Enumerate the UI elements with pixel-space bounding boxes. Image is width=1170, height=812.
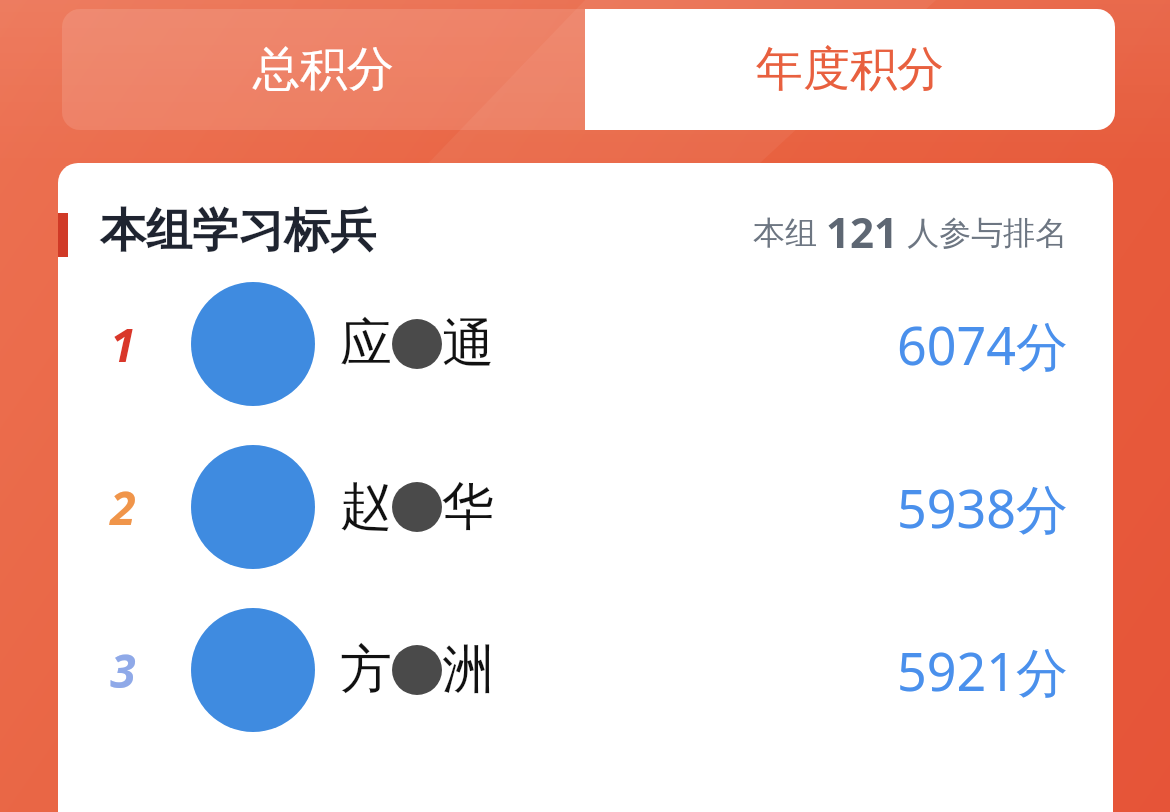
- staticText: 3: [110, 639, 136, 702]
- staticText: 1: [110, 313, 136, 376]
- button[interactable]: 总积分: [62, 9, 585, 130]
- staticText: 人参与排名: [899, 210, 1068, 254]
- staticText: 洲: [442, 637, 494, 703]
- staticText: 应: [340, 311, 392, 377]
- staticText: 5938分: [897, 472, 1068, 543]
- button[interactable]: 2: [58, 445, 1113, 569]
- button[interactable]: 3: [58, 608, 1113, 732]
- staticText: 赵: [340, 474, 392, 540]
- staticText: 5921分: [897, 635, 1068, 706]
- button[interactable]: 1: [58, 282, 1113, 406]
- staticText: 方: [340, 637, 392, 703]
- staticText: 本组: [753, 210, 826, 254]
- staticText: 2: [110, 476, 136, 539]
- staticText: 年度积分: [756, 40, 944, 99]
- staticText: 121: [826, 203, 899, 260]
- staticText: 华: [442, 474, 494, 540]
- button[interactable]: 年度积分: [585, 9, 1115, 130]
- staticText: 本组学习标兵: [100, 202, 376, 260]
- staticText: 通: [442, 311, 494, 377]
- staticText: 总积分: [253, 40, 394, 99]
- staticText: 6074分: [897, 309, 1068, 380]
